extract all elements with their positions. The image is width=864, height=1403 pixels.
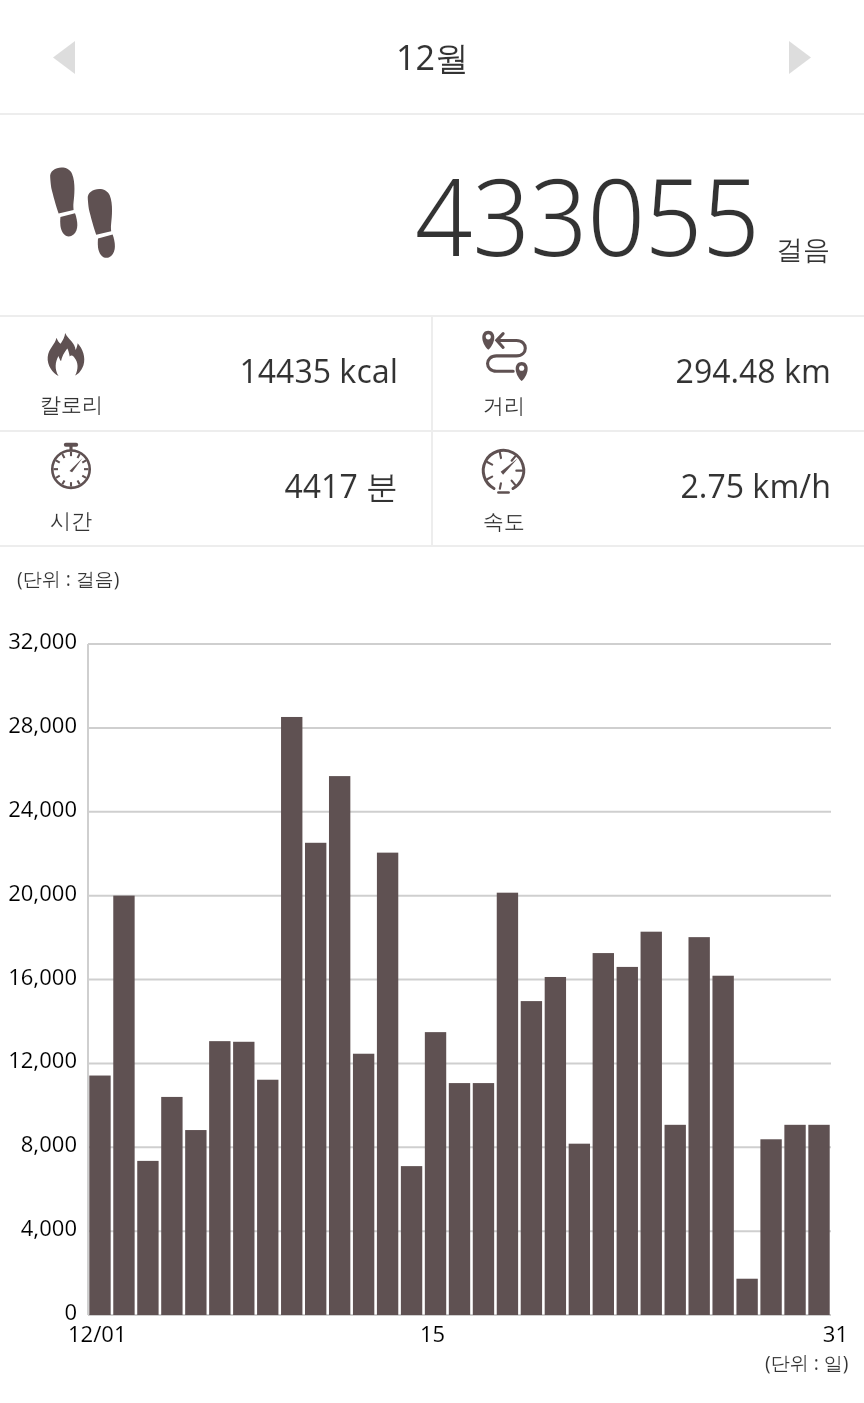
- staticText: 12월: [396, 34, 469, 80]
- staticText: 4417 분: [0, 464, 398, 508]
- staticText: 15: [420, 1318, 446, 1348]
- staticText: 14435 kcal: [0, 349, 398, 393]
- staticText: 속도: [483, 509, 525, 535]
- button[interactable]: 거리: [433, 317, 864, 430]
- staticText: 칼로리: [40, 392, 103, 418]
- staticText: 거리: [483, 393, 525, 419]
- button[interactable]: 이전 달: [24, 17, 104, 97]
- staticText: 433055: [415, 142, 760, 288]
- staticText: 31: [0, 1318, 848, 1348]
- staticText: 20,000: [0, 877, 77, 907]
- button[interactable]: 칼로리: [0, 317, 431, 430]
- staticText: 4,000: [0, 1212, 77, 1242]
- staticText: (단위 : 일): [765, 1350, 849, 1376]
- staticText: 8,000: [0, 1128, 77, 1158]
- staticText: 시간: [50, 508, 92, 534]
- staticText: (단위 : 걸음): [17, 566, 120, 592]
- staticText: 12,000: [0, 1044, 77, 1074]
- button[interactable]: 속도: [433, 432, 864, 545]
- button[interactable]: 시간: [0, 432, 431, 545]
- staticText: 32,000: [0, 625, 77, 655]
- staticText: 294.48 km: [433, 349, 831, 393]
- staticText: 0: [0, 1296, 77, 1326]
- staticText: 16,000: [0, 961, 77, 991]
- staticText: 28,000: [0, 709, 77, 739]
- staticText: 걸음: [776, 233, 830, 267]
- button[interactable]: 다음 달: [760, 17, 840, 97]
- staticText: 24,000: [0, 793, 77, 823]
- staticText: 2.75 km/h: [433, 464, 831, 508]
- staticText: 12/01: [68, 1318, 127, 1348]
